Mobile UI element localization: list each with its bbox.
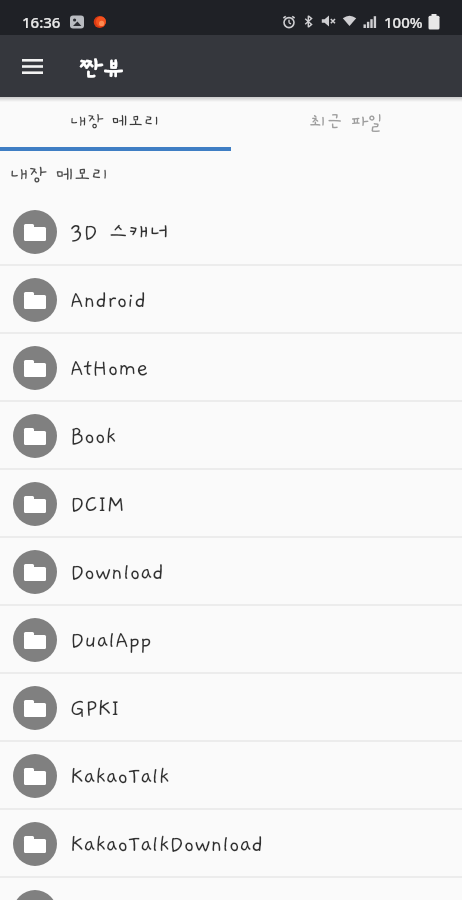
staticText: KakaoTalkDownload <box>70 832 264 857</box>
staticText: 내장 메모리 <box>10 164 110 186</box>
staticText: AtHome <box>70 356 149 381</box>
button[interactable] <box>0 35 64 97</box>
staticText: Book <box>70 424 117 449</box>
button[interactable]: 내장 메모리 <box>0 97 231 147</box>
button[interactable]: GPKI <box>0 674 462 742</box>
staticText: 최근 파일 <box>310 112 384 132</box>
staticText: KakaoTalk <box>70 764 170 789</box>
staticText: DCIM <box>70 492 125 517</box>
button[interactable]: 3D 스캐너 <box>0 198 462 266</box>
button[interactable]: KakaoTalk <box>0 742 462 810</box>
button[interactable]: AtHome <box>0 334 462 402</box>
button[interactable]: Download <box>0 538 462 606</box>
button[interactable]: Book <box>0 402 462 470</box>
staticText: 16:36 <box>22 12 61 32</box>
button[interactable]: DualApp <box>0 606 462 674</box>
button[interactable]: DCIM <box>0 470 462 538</box>
staticText: 짠뷰 <box>80 55 125 82</box>
staticText: GPKI <box>70 696 120 721</box>
button[interactable]: Android <box>0 266 462 334</box>
button[interactable]: 최근 파일 <box>231 97 462 147</box>
staticText: Android <box>70 288 147 313</box>
staticText: 내장 메모리 <box>70 112 161 132</box>
staticText: 100% <box>384 12 423 32</box>
staticText: DualApp <box>70 628 152 653</box>
button[interactable]: KakaoTalkDownload <box>0 810 462 878</box>
staticText: 3D 스캐너 <box>70 220 170 245</box>
button[interactable]: LGBackup <box>0 878 462 900</box>
staticText: Download <box>70 560 164 585</box>
